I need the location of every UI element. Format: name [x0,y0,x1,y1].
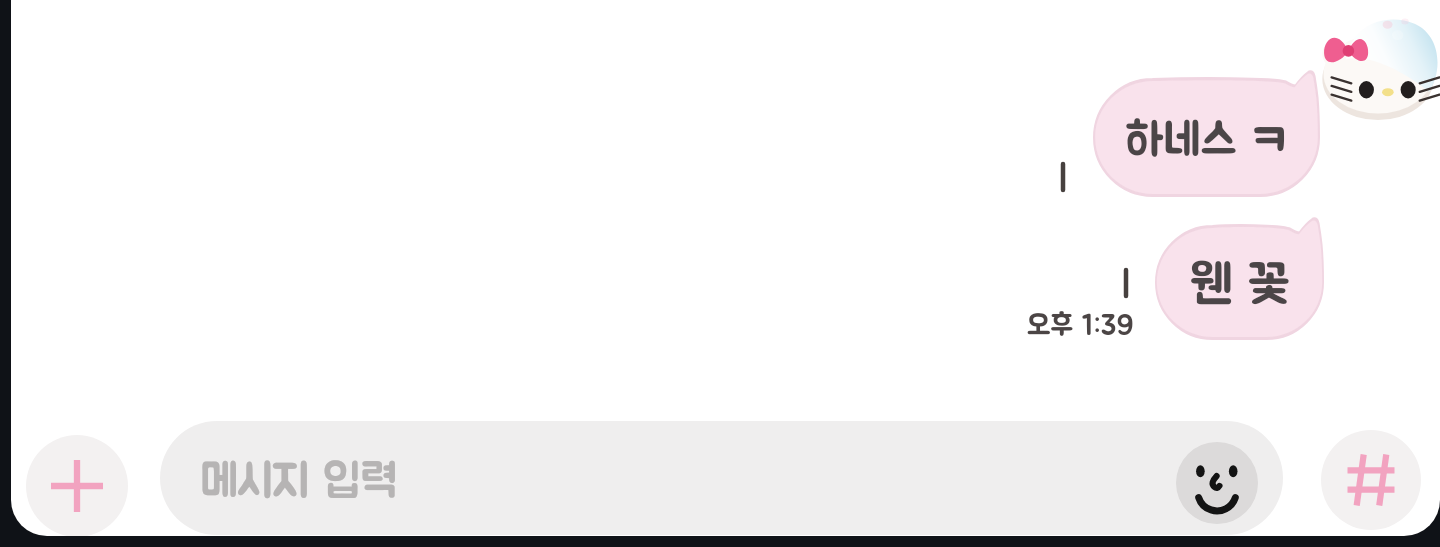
button[interactable]: 웬 꽃 [1134,211,1345,354]
button[interactable]: 하네스 ㅋ [1072,64,1341,211]
button[interactable]: Shortcuts [1321,430,1421,530]
button[interactable]: Profile photo [1320,12,1436,120]
staticText: 하네스 ㅋ [1125,118,1289,164]
button[interactable]: Add attachment [26,435,128,536]
button[interactable]: Emoji [1176,442,1258,524]
staticText: 오후 1:39 [1027,312,1134,341]
button[interactable]: 메시지 입력 [160,421,1283,535]
staticText: 메시지 입력 [201,459,399,505]
staticText: 웬 꽃 [1189,260,1290,312]
